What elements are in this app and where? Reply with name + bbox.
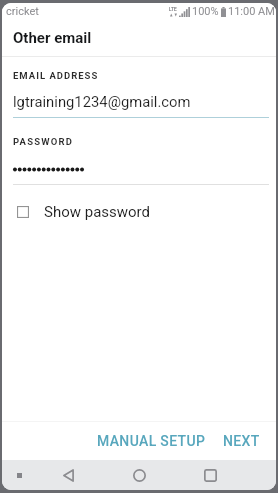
button[interactable]: Recent apps xyxy=(193,460,227,490)
staticText: 11:00 AM xyxy=(228,5,275,18)
staticText: NEXT xyxy=(223,433,260,449)
button[interactable]: NEXT xyxy=(212,426,276,456)
staticText: PASSWORD xyxy=(13,136,74,147)
staticText: EMAIL ADDRESS xyxy=(13,70,99,81)
staticText: Show password xyxy=(44,203,151,221)
button[interactable]: MANUAL SETUP xyxy=(91,426,212,456)
button[interactable]: Back xyxy=(51,460,85,490)
staticText: LTE xyxy=(169,7,177,13)
staticText: lgtraining1234@gmail.com xyxy=(13,93,191,110)
staticText: 100% xyxy=(192,5,219,18)
button[interactable]: Show password xyxy=(2,199,276,225)
staticText: MANUAL SETUP xyxy=(97,433,206,449)
button[interactable]: Home xyxy=(122,460,156,490)
staticText: Other email xyxy=(13,29,92,47)
staticText: cricket xyxy=(6,5,39,18)
